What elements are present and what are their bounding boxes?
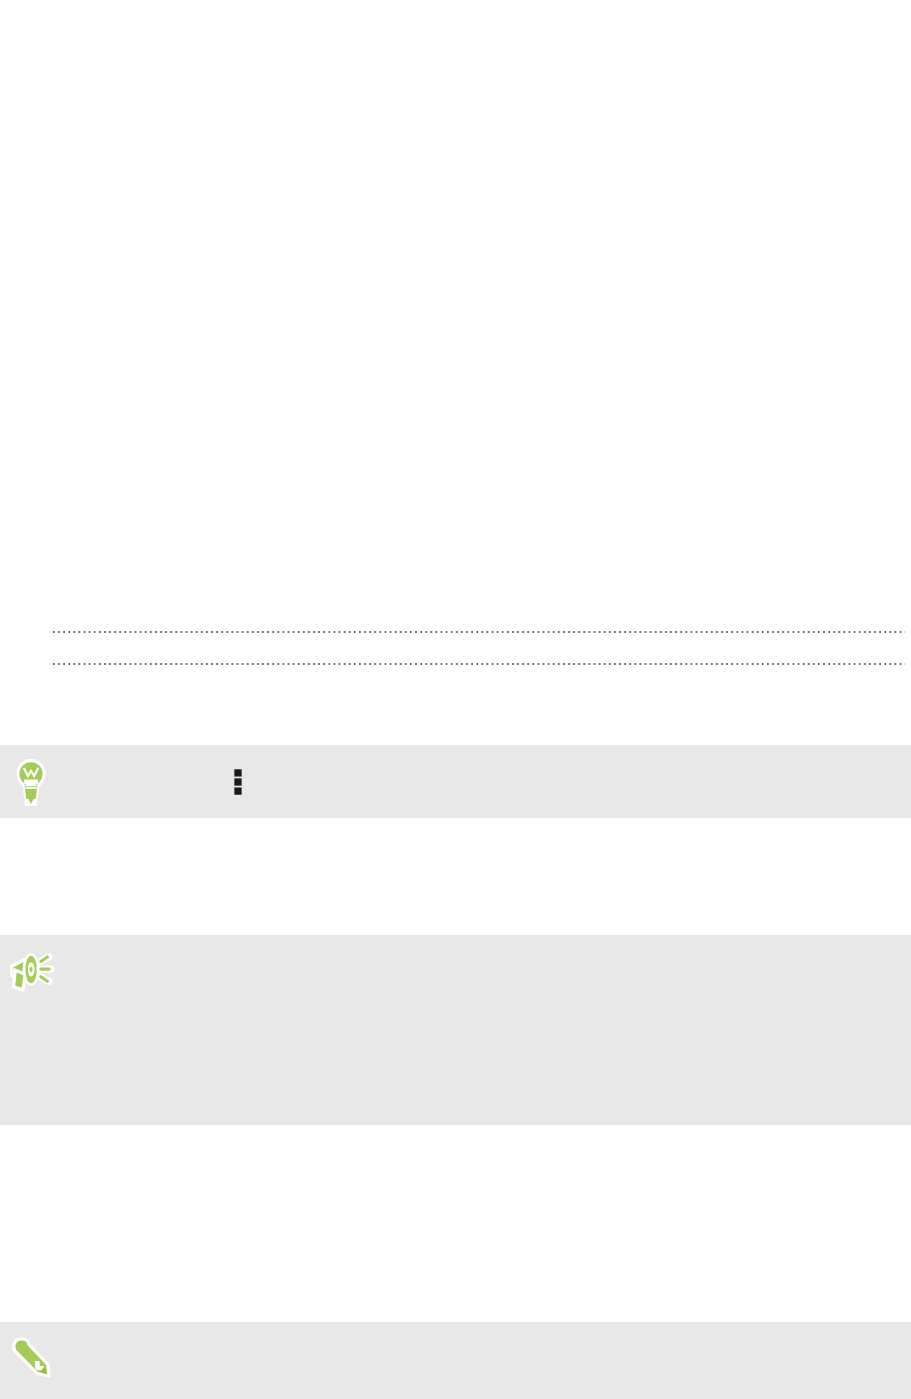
other: Note bbox=[11, 1335, 52, 1378]
button[interactable]: Announcement bbox=[0, 935, 911, 1125]
button[interactable]: Tip bbox=[0, 745, 911, 818]
other: Announcement bbox=[10, 952, 54, 990]
button[interactable]: Note bbox=[0, 1322, 911, 1399]
button[interactable]: More options bbox=[231, 769, 245, 795]
other: Tip bbox=[14, 756, 48, 806]
